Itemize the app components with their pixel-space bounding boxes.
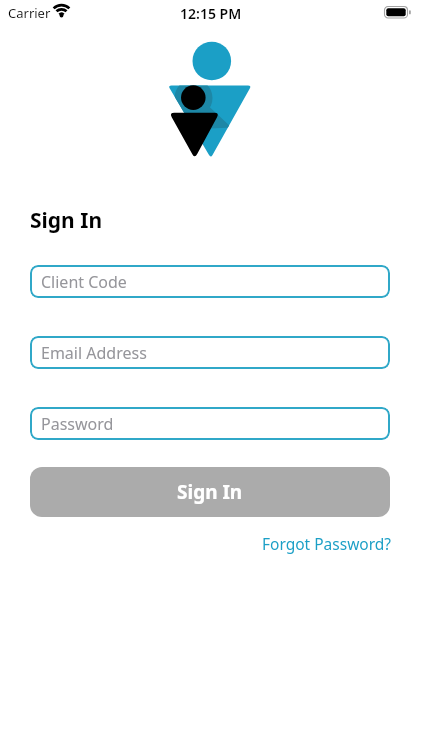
staticText: Carrier (8, 4, 51, 22)
staticText: Email Address (41, 342, 147, 364)
staticText: Password (41, 413, 114, 435)
button[interactable]: Email Address (30, 336, 390, 369)
button[interactable]: Forgot Password? (262, 533, 392, 554)
button[interactable]: Password (30, 407, 390, 440)
staticText: Forgot Password? (262, 533, 392, 554)
staticText: Sign In (177, 479, 243, 505)
button[interactable]: Sign In (30, 467, 390, 517)
button[interactable]: Client Code (30, 265, 390, 298)
staticText: Client Code (41, 271, 127, 293)
staticText: Sign In (30, 206, 103, 235)
staticText: 12:15 PM (180, 4, 242, 23)
